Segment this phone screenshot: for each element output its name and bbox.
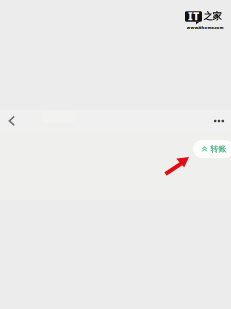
staticText: IT (188, 9, 199, 23)
staticText: www.ithome.com (186, 25, 223, 30)
button[interactable]: Back (0, 109, 24, 133)
staticText: 转账 (210, 144, 226, 154)
staticText: 之家 (203, 10, 221, 22)
button[interactable]: More (208, 109, 230, 133)
button[interactable]: 转账 (193, 140, 231, 158)
